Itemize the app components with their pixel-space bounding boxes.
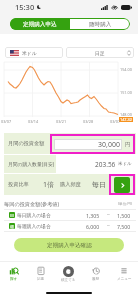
staticText: ～	[106, 212, 111, 218]
staticText: 15:30	[15, 2, 35, 12]
staticText: (単位:円)	[118, 201, 132, 206]
staticText: 月間の購入数量(目安)	[8, 161, 55, 168]
staticText: 6,000	[86, 223, 100, 230]
staticText: 定期購入申込確認	[47, 242, 92, 249]
staticText: 米ドル	[118, 161, 132, 167]
staticText: 随時購入	[89, 21, 112, 28]
staticText: 151.00	[120, 90, 132, 95]
staticText: 03/07	[110, 119, 121, 124]
button[interactable]: メニュー	[110, 262, 138, 286]
button[interactable]: 30,000	[50, 134, 135, 154]
staticText: 毎日	[92, 180, 106, 189]
staticText: 積立てる	[61, 278, 76, 283]
staticText: 購入頻度	[60, 181, 81, 188]
staticText: 147.32	[120, 117, 132, 122]
staticText: 履歴	[92, 277, 100, 282]
button[interactable]: 日足	[66, 47, 134, 58]
staticText: 03/07	[1, 119, 12, 124]
button[interactable]: 履歴	[82, 262, 110, 286]
staticText: 日足	[95, 50, 105, 56]
staticText: 1,305	[86, 212, 100, 219]
staticText: 1倍	[43, 180, 55, 190]
staticText: 154.00	[120, 67, 132, 72]
button[interactable]: 次へ	[109, 174, 135, 195]
staticText: 円	[125, 141, 131, 148]
staticText: 30,000	[98, 140, 120, 150]
staticText: 投資比率	[8, 181, 29, 188]
button[interactable]: 米ドル	[5, 47, 63, 58]
staticText: メニュー	[117, 277, 132, 282]
staticText: 毎日購入の場合	[17, 212, 51, 218]
button[interactable]: 探す	[0, 262, 27, 286]
button[interactable]: 随時購入	[70, 18, 130, 30]
staticText: 03/14	[28, 119, 39, 124]
staticText: 探す	[10, 277, 18, 282]
staticText: 月間の投資金額	[8, 140, 45, 147]
button[interactable]: 記事	[27, 262, 54, 286]
staticText: 毎週購入の場合	[17, 223, 51, 229]
staticText: 日	[10, 213, 14, 218]
button[interactable]: 定期購入申込	[10, 18, 70, 30]
button[interactable]: 定期購入申込確認	[14, 238, 124, 252]
staticText: ～	[106, 223, 111, 229]
staticText: 週	[10, 224, 14, 229]
staticText: 米ドル	[22, 50, 37, 56]
staticText: 148.00	[120, 112, 132, 117]
staticText: 1,500	[117, 212, 131, 219]
staticText: 7,500	[117, 223, 131, 230]
staticText: 定期購入申込	[23, 21, 57, 28]
staticText: 203.56	[95, 160, 116, 169]
staticText: 記事	[37, 277, 45, 282]
staticText: 03/21	[56, 119, 67, 124]
button[interactable]: 積立てる	[54, 262, 82, 286]
staticText: 03/28	[83, 119, 94, 124]
staticText: 毎回の投資金額(参考値)	[4, 200, 60, 207]
